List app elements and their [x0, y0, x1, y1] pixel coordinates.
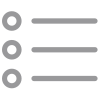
button[interactable]: List item 3 [2, 69, 98, 88]
button[interactable]: List item 1 [2, 11, 98, 31]
button[interactable]: List item 2 [2, 40, 98, 60]
